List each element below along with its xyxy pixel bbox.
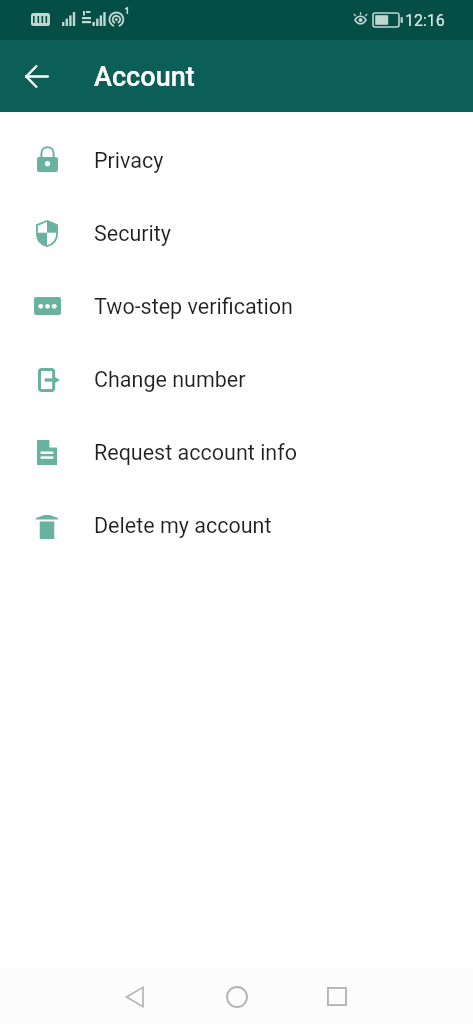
button[interactable]: Delete my account	[0, 487, 473, 560]
button[interactable]: Back	[110, 972, 159, 1021]
button[interactable]: Security	[0, 195, 473, 268]
staticText: Account	[94, 61, 195, 93]
staticText: Privacy	[94, 148, 164, 173]
button[interactable]: Recent apps	[312, 972, 361, 1021]
staticText: Change number	[94, 367, 246, 392]
button[interactable]: Two-step verification	[0, 268, 473, 341]
staticText: Delete my account	[94, 513, 272, 538]
button[interactable]: Request account info	[0, 414, 473, 487]
staticText: 12:16	[405, 11, 445, 30]
button[interactable]: Back	[13, 52, 61, 100]
staticText: Two-step verification	[94, 294, 293, 319]
staticText: Security	[94, 221, 171, 246]
button[interactable]: Privacy	[0, 122, 473, 195]
staticText: Request account info	[94, 440, 297, 465]
button[interactable]: Home	[212, 972, 261, 1021]
button[interactable]: Change number	[0, 341, 473, 414]
